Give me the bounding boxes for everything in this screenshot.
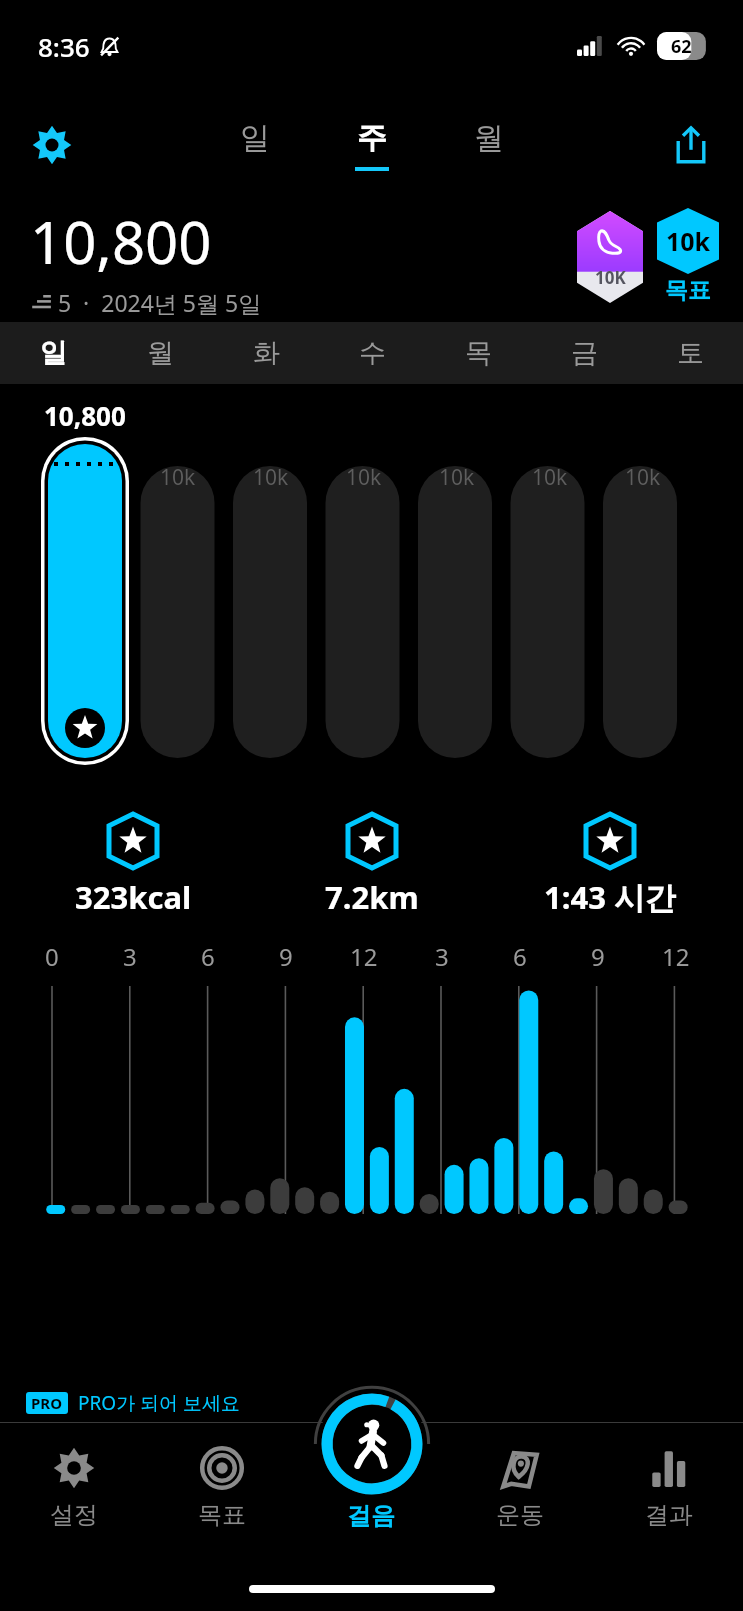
button[interactable]: 월	[107, 336, 213, 370]
staticText: 화	[253, 336, 280, 370]
staticText: 1:43 시간	[544, 876, 676, 918]
button[interactable]: 1:43 시간	[495, 814, 725, 918]
button[interactable]: Steps	[313, 1385, 431, 1503]
staticText: 12	[662, 940, 690, 973]
button[interactable]: 일	[207, 119, 303, 171]
button[interactable]: 목표	[148, 1446, 296, 1530]
staticText: PRO	[31, 1393, 63, 1413]
staticText: 10k	[532, 463, 568, 492]
staticText: 10k	[160, 463, 196, 492]
staticText: 목표	[665, 276, 711, 305]
button[interactable]: 설정	[0, 1446, 148, 1530]
staticText: 설정	[50, 1500, 98, 1530]
staticText: 3	[435, 940, 449, 973]
staticText: 결과	[645, 1500, 693, 1530]
staticText: 3	[123, 940, 137, 973]
button[interactable]: 수	[319, 336, 425, 370]
button[interactable]: 토	[637, 336, 743, 370]
staticText: 목표	[198, 1500, 246, 1530]
staticText: 금	[571, 336, 598, 370]
button[interactable]: 주	[324, 119, 420, 171]
button[interactable]: 금	[531, 336, 637, 370]
staticText: 목	[465, 336, 492, 370]
staticText: 9	[591, 940, 605, 973]
button[interactable]: 운동	[445, 1446, 594, 1530]
staticText: 10k	[439, 463, 475, 492]
staticText: 10k	[253, 463, 289, 492]
staticText: 일	[207, 119, 303, 157]
button[interactable]: 10k	[657, 208, 719, 305]
button[interactable]: 7.2km	[257, 814, 487, 918]
staticText: 10K	[595, 266, 626, 289]
staticText: 주	[324, 119, 420, 157]
staticText: 6	[513, 940, 527, 973]
button[interactable]: PRO	[26, 1390, 743, 1416]
staticText: 수	[359, 336, 386, 370]
button[interactable]: 화	[213, 336, 319, 370]
staticText: 323kcal	[75, 876, 192, 918]
staticText: 월	[147, 336, 174, 370]
button[interactable]: 10K badge	[577, 211, 643, 303]
button[interactable]: 걸음	[296, 1445, 445, 1531]
staticText: 62	[671, 34, 692, 59]
button[interactable]: 월	[441, 119, 537, 171]
button[interactable]: 323kcal	[18, 814, 248, 918]
staticText: 7.2km	[325, 876, 419, 918]
staticText: 10k	[666, 224, 711, 258]
staticText: 10,800	[30, 202, 212, 281]
staticText: PRO가 되어 보세요	[78, 1390, 241, 1416]
staticText: 10,800	[44, 398, 126, 433]
staticText: 8:36	[38, 29, 90, 64]
staticText: 운동	[496, 1500, 544, 1530]
button[interactable]: 결과	[594, 1446, 743, 1530]
staticText: 10k	[625, 463, 661, 492]
staticText: 월	[441, 119, 537, 157]
button[interactable]: 목	[425, 336, 531, 370]
staticText: 12	[350, 940, 378, 973]
staticText: 9	[279, 940, 293, 973]
staticText: 5 · 2024년 5월 5일	[58, 287, 262, 318]
staticText: 걸음	[347, 1501, 395, 1531]
staticText: 일	[40, 336, 67, 370]
button[interactable]: Share	[663, 117, 719, 173]
staticText: 10k	[346, 463, 382, 492]
button[interactable]: Settings	[24, 117, 80, 173]
staticText: 0	[45, 940, 59, 973]
button[interactable]: 일	[0, 336, 107, 370]
staticText: 6	[201, 940, 215, 973]
staticText: 토	[677, 336, 704, 370]
